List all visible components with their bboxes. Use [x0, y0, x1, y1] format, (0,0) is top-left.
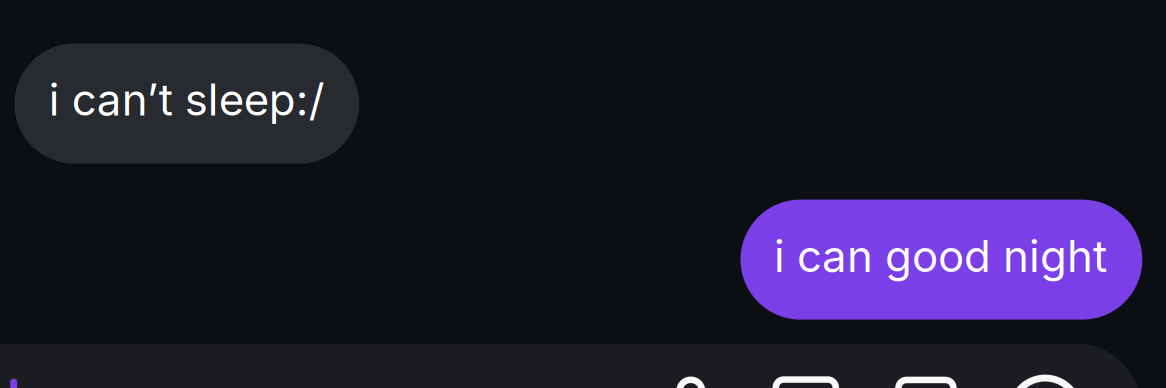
button[interactable]: i can’t sleep:/ [14, 44, 359, 164]
button[interactable]: Photos [776, 380, 836, 388]
staticText: i can’t sleep:/ [49, 73, 325, 126]
button[interactable]: Camera [679, 380, 702, 388]
button[interactable]: Stickers [898, 380, 953, 388]
button[interactable]: i can good night [740, 200, 1142, 320]
button[interactable]: Voice message [1011, 378, 1079, 388]
staticText: i can good night [774, 230, 1107, 283]
